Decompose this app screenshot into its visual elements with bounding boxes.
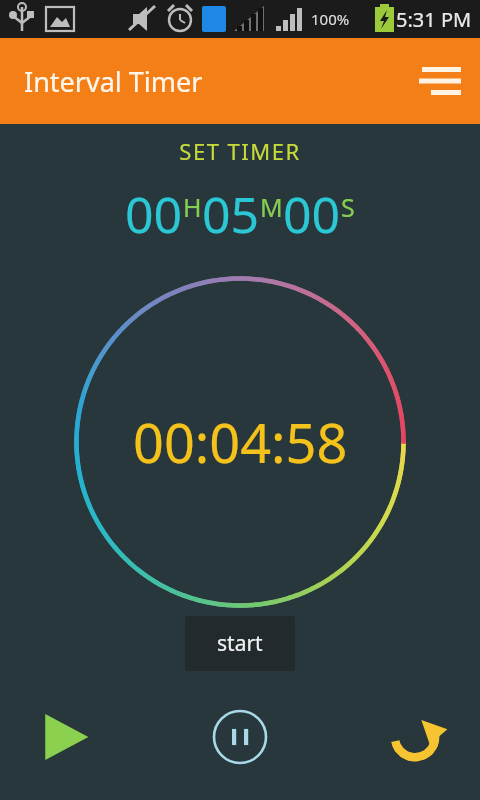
staticText: M: [260, 190, 283, 224]
staticText: 100%: [311, 9, 350, 29]
staticText: SET TIMER: [0, 136, 480, 166]
staticText: 5:31 PM: [396, 6, 472, 33]
button[interactable]: start: [185, 616, 295, 671]
staticText: H: [183, 190, 202, 224]
staticText: 00: [283, 180, 341, 248]
staticText: Interval Timer: [24, 63, 203, 100]
button[interactable]: Start: [26, 698, 104, 776]
staticText: 00:04:58: [133, 405, 348, 479]
staticText: start: [217, 629, 263, 658]
staticText: 05: [202, 180, 260, 248]
button[interactable]: Pause: [201, 698, 279, 776]
button[interactable]: Reset: [376, 698, 454, 776]
button[interactable]: Menu: [412, 53, 468, 109]
staticText: 00: [125, 180, 183, 248]
staticText: S: [341, 190, 355, 224]
